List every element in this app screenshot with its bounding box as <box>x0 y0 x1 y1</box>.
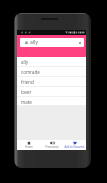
button[interactable]: Clear <box>78 41 82 45</box>
staticText: ally <box>21 59 29 65</box>
staticText: Add to Favourite <box>64 145 85 149</box>
staticText: friend <box>21 79 34 85</box>
staticText: comrade <box>21 69 40 75</box>
button[interactable]: mate <box>17 97 86 106</box>
button[interactable]: Menu <box>20 38 84 47</box>
staticText: Pronounce <box>45 145 59 149</box>
staticText: ally <box>30 39 38 46</box>
button[interactable]: Add to Favourite <box>63 140 86 150</box>
button[interactable]: Home <box>17 140 40 150</box>
staticText: lover <box>21 89 32 95</box>
button[interactable]: friend <box>17 77 86 87</box>
staticText: Home <box>25 145 33 149</box>
other: Menu <box>25 41 28 44</box>
staticText: mate <box>21 99 32 105</box>
button[interactable]: ally <box>17 57 86 67</box>
button[interactable]: lover <box>17 87 86 97</box>
button[interactable]: Pronounce <box>40 140 63 150</box>
button[interactable]: comrade <box>17 67 86 77</box>
